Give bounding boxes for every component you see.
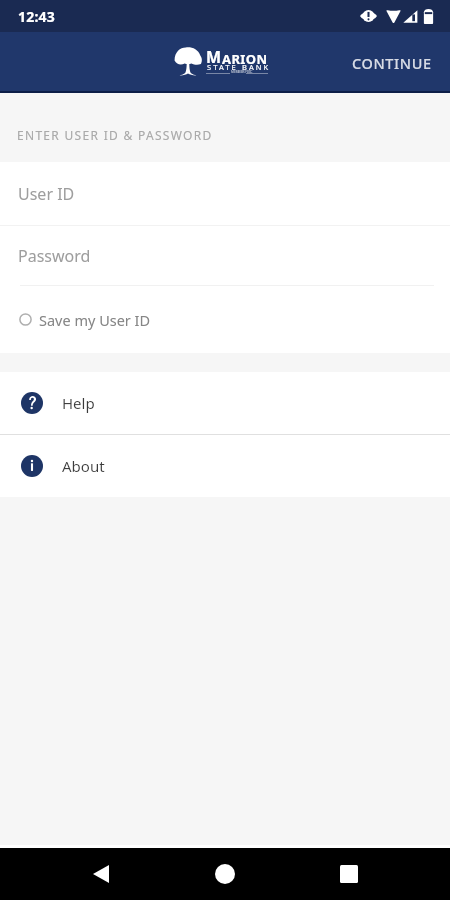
button[interactable]: User ID bbox=[0, 162, 450, 225]
button[interactable]: Back bbox=[78, 851, 124, 897]
staticText: MEMBER FDIC bbox=[231, 70, 253, 74]
staticText: About bbox=[62, 456, 105, 476]
staticText: M bbox=[206, 46, 222, 68]
button[interactable]: Help bbox=[0, 372, 450, 434]
staticText: CONTINUE bbox=[352, 53, 432, 73]
staticText: Save my User ID bbox=[39, 310, 151, 330]
button[interactable]: Recent apps bbox=[326, 851, 372, 897]
button[interactable]: Home bbox=[202, 851, 248, 897]
button[interactable]: Save my User ID bbox=[0, 286, 450, 353]
staticText: ARION bbox=[222, 50, 268, 68]
button[interactable]: CONTINUE bbox=[332, 37, 450, 89]
staticText: 12:43 bbox=[18, 7, 55, 26]
staticText: User ID bbox=[18, 183, 75, 205]
button[interactable]: Password bbox=[0, 226, 450, 285]
staticText: Password bbox=[18, 245, 91, 267]
staticText: ENTER USER ID & PASSWORD bbox=[17, 127, 213, 143]
staticText: STATE BANK bbox=[207, 62, 271, 72]
button[interactable]: About bbox=[0, 435, 450, 497]
staticText: Help bbox=[62, 393, 95, 413]
